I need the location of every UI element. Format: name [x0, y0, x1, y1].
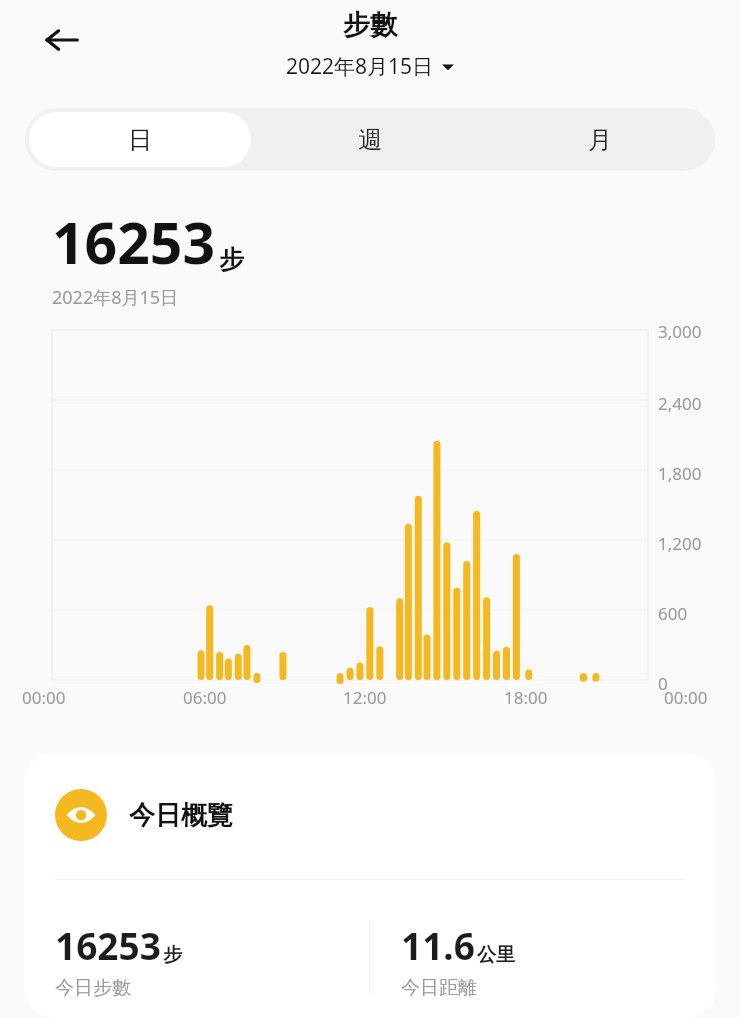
- staticText: 今日概覽: [129, 799, 233, 832]
- staticText: 12:00: [343, 686, 387, 709]
- staticText: 今日步數: [55, 976, 131, 1000]
- staticText: 月: [588, 125, 612, 155]
- staticText: 公里: [477, 943, 515, 967]
- staticText: 步: [219, 244, 244, 275]
- staticText: 週: [358, 125, 382, 155]
- button[interactable]: 月: [489, 112, 711, 167]
- staticText: 11.6: [401, 920, 475, 970]
- staticText: 步: [163, 943, 182, 967]
- staticText: 00:00: [664, 686, 708, 709]
- button[interactable]: Back: [34, 12, 90, 68]
- staticText: 1,800: [658, 462, 702, 485]
- staticText: 600: [658, 602, 688, 625]
- staticText: 0: [658, 672, 668, 695]
- staticText: 16253: [55, 920, 161, 970]
- staticText: 18:00: [504, 686, 548, 709]
- button[interactable]: 今日概覽: [24, 753, 716, 1018]
- button[interactable]: 2022年8月15日: [280, 50, 460, 83]
- staticText: 今日距離: [401, 976, 477, 1000]
- staticText: 2022年8月15日: [52, 285, 179, 310]
- button[interactable]: 日: [29, 112, 251, 167]
- staticText: 06:00: [183, 686, 227, 709]
- staticText: 步數: [343, 8, 397, 42]
- staticText: 3,000: [658, 320, 702, 343]
- staticText: 00:00: [22, 686, 66, 709]
- button[interactable]: 週: [259, 112, 481, 167]
- staticText: 16253: [52, 203, 216, 281]
- staticText: 2,400: [658, 392, 702, 415]
- staticText: 日: [128, 125, 152, 155]
- staticText: 2022年8月15日: [286, 52, 434, 81]
- staticText: 1,200: [658, 532, 702, 555]
